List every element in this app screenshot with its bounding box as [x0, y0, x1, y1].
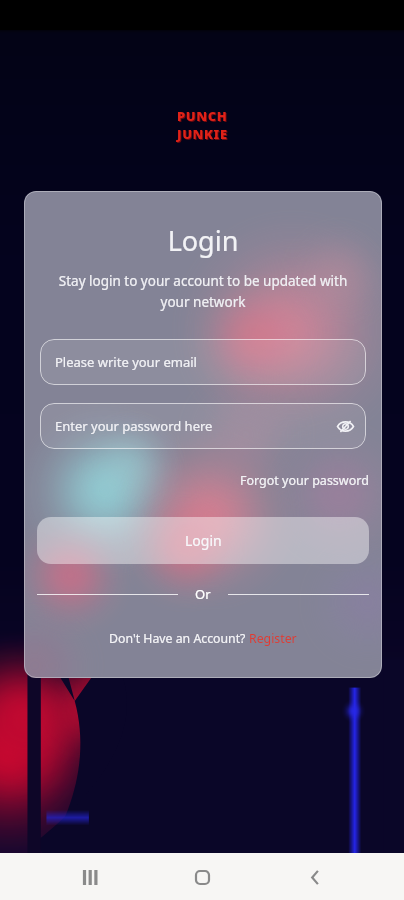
button[interactable]: Back: [298, 860, 332, 894]
staticText: Stay login to your account to be updated…: [46, 272, 360, 311]
button[interactable]: Please write your email: [40, 339, 366, 385]
button[interactable]: Register: [249, 630, 297, 647]
staticText: Login: [24, 222, 382, 259]
button[interactable]: Forgot your password: [240, 472, 369, 489]
staticText: Enter your password here: [55, 417, 213, 435]
staticText: PUNCH: [178, 108, 229, 126]
staticText: Don't Have an Account?: [109, 630, 249, 647]
staticText: Or: [195, 585, 211, 603]
button[interactable]: Show password: [331, 412, 359, 440]
staticText: Login: [185, 531, 222, 550]
staticText: JUNKIE: [177, 125, 228, 143]
staticText: JUNKIE: [178, 126, 229, 144]
button[interactable]: Login: [37, 517, 369, 564]
button[interactable]: Home: [185, 860, 219, 894]
button[interactable]: Recents: [72, 860, 106, 894]
staticText: Please write your email: [55, 353, 197, 371]
button[interactable]: Enter your password here: [40, 403, 366, 449]
staticText: PUNCH: [177, 107, 228, 125]
